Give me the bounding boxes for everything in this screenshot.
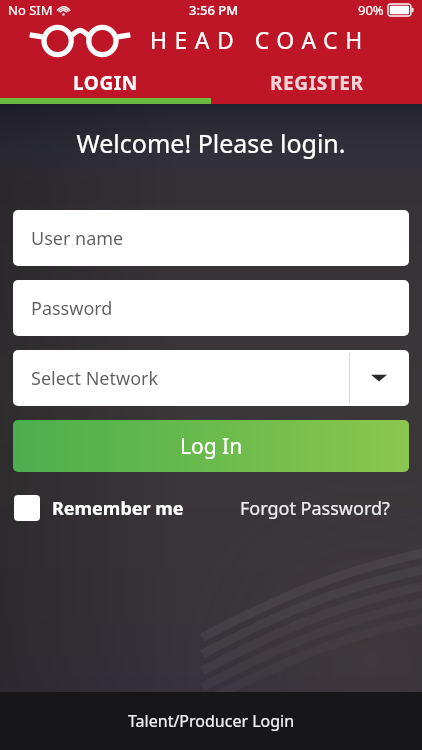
button[interactable]: User name <box>13 210 409 266</box>
staticText: Welcome! Please login. <box>0 126 422 160</box>
staticText: User name <box>31 226 124 251</box>
staticText: REGISTER <box>270 70 364 96</box>
staticText: HEAD COACH <box>150 24 370 55</box>
button[interactable]: Log In <box>13 420 409 472</box>
staticText: Log In <box>180 432 243 461</box>
staticText: Select Network <box>31 366 159 391</box>
button[interactable]: Talent/Producer Login <box>0 692 422 750</box>
staticText: No SIM <box>8 1 53 19</box>
staticText: 90% <box>358 1 384 19</box>
button[interactable]: Select Network dropdown <box>13 350 409 406</box>
staticText: LOGIN <box>73 70 138 96</box>
staticText: Forgot Password? <box>240 496 390 521</box>
staticText: 3:56 PM <box>189 1 239 19</box>
button[interactable]: Remember me <box>14 495 184 521</box>
button[interactable]: REGISTER <box>211 62 422 104</box>
staticText: Remember me <box>52 496 184 521</box>
button[interactable]: Forgot Password? <box>240 496 408 521</box>
button[interactable]: Password <box>13 280 409 336</box>
staticText: Talent/Producer Login <box>128 710 295 732</box>
staticText: Password <box>31 296 113 321</box>
button[interactable]: LOGIN <box>0 62 211 104</box>
